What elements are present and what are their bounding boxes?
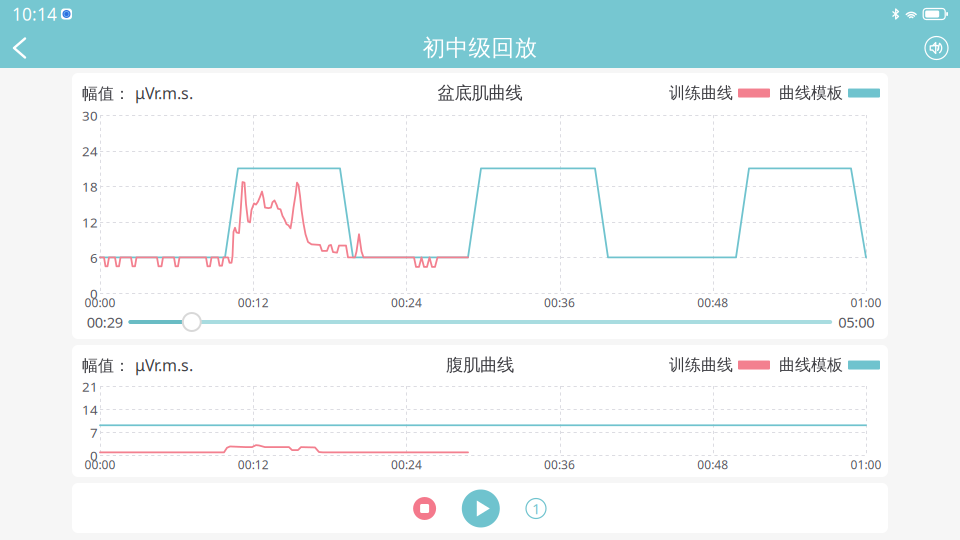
staticText: 00:00: [84, 294, 115, 310]
staticText: 0: [90, 447, 98, 464]
staticText: 曲线模板: [779, 355, 843, 375]
staticText: 1: [532, 499, 540, 518]
staticText: 幅值： μVr.m.s.: [82, 354, 193, 376]
staticText: 30: [82, 107, 98, 124]
staticText: 00:36: [544, 294, 575, 310]
staticText: 18: [82, 178, 98, 195]
staticText: 幅值： μVr.m.s.: [82, 82, 193, 104]
staticText: 00:48: [697, 456, 728, 472]
button[interactable]: Stop: [408, 491, 442, 525]
staticText: 00:00: [84, 456, 115, 472]
staticText: 01:00: [850, 456, 881, 472]
button[interactable]: Back: [0, 29, 39, 66]
button[interactable]: Playback position: [72, 312, 888, 332]
staticText: 盆底肌曲线: [437, 82, 522, 104]
staticText: 6: [90, 249, 98, 267]
staticText: 21: [82, 378, 98, 395]
staticText: 腹肌曲线: [446, 354, 514, 376]
button[interactable]: Sound: [913, 36, 960, 59]
staticText: 10:14: [12, 2, 57, 25]
staticText: 7: [90, 424, 98, 441]
button[interactable]: Play: [462, 489, 500, 527]
staticText: 00:48: [697, 294, 728, 310]
staticText: 00:36: [544, 456, 575, 472]
staticText: 初中级回放: [422, 34, 537, 62]
staticText: 0: [90, 285, 98, 302]
staticText: 24: [82, 142, 98, 160]
button[interactable]: Repeat count: [521, 493, 551, 523]
staticText: 00:12: [238, 456, 269, 472]
staticText: 训练曲线: [669, 83, 733, 103]
staticText: 训练曲线: [669, 355, 733, 375]
staticText: 05:00: [838, 312, 874, 332]
staticText: 14: [82, 401, 98, 418]
staticText: 00:24: [391, 456, 422, 472]
staticText: 00:12: [238, 294, 269, 310]
staticText: 00:24: [391, 294, 422, 310]
staticText: 曲线模板: [779, 83, 843, 103]
staticText: 00:29: [87, 312, 123, 332]
staticText: 12: [82, 213, 98, 231]
staticText: 01:00: [850, 294, 881, 310]
